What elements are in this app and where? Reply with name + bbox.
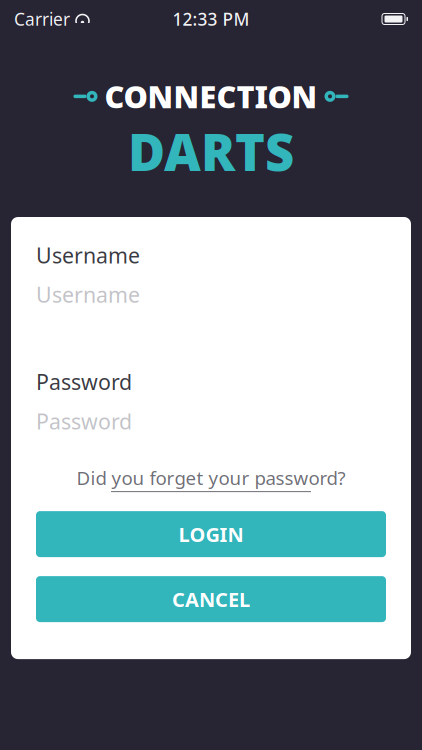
button[interactable]: Did you forget your password? bbox=[36, 465, 386, 492]
button[interactable]: CANCEL bbox=[36, 576, 386, 622]
staticText: Username bbox=[36, 280, 140, 309]
staticText: Carrier bbox=[14, 7, 70, 30]
staticText: 12:33 PM bbox=[172, 7, 249, 30]
staticText: Password bbox=[36, 407, 132, 435]
staticText: DARTS bbox=[128, 118, 294, 185]
button[interactable]: LOGIN bbox=[36, 511, 386, 557]
staticText: Password bbox=[36, 368, 132, 396]
staticText: LOGIN bbox=[178, 521, 243, 547]
staticText: CONNECTION bbox=[104, 76, 317, 117]
staticText: CANCEL bbox=[172, 586, 250, 612]
staticText: Did you forget your password? bbox=[76, 465, 345, 490]
staticText: Username bbox=[36, 241, 140, 269]
